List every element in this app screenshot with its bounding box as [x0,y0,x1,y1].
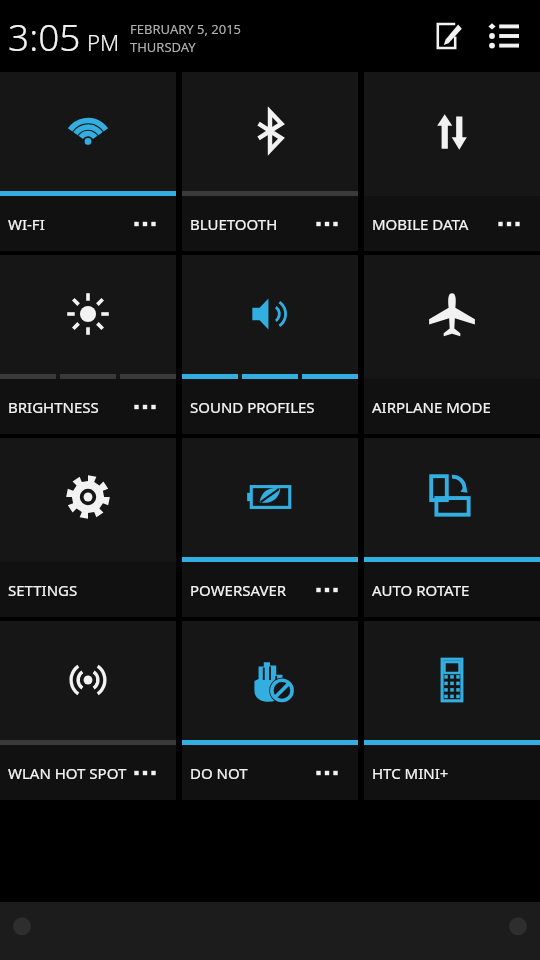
button[interactable]: WI-FI [0,72,176,251]
button[interactable]: MOBILE DATA [364,72,540,251]
staticText: PM [87,27,120,57]
staticText: WLAN HOT SPOT [8,763,127,783]
staticText: AIRPLANE MODE [372,397,491,417]
button[interactable]: WLAN HOT SPOT options [128,756,162,790]
button[interactable]: HTC MINI+ [364,621,540,800]
staticText: MOBILE DATA [372,214,469,234]
staticText: DO NOT DISTURB [190,763,314,783]
button[interactable]: SETTINGS [0,438,176,617]
button[interactable]: DO NOT DISTURB options [310,756,344,790]
staticText: BRIGHTNESS [8,397,99,417]
staticText: AUTO ROTATE [372,580,470,600]
button[interactable]: DO NOT DISTURB [182,621,358,800]
staticText: SETTINGS [8,580,78,600]
staticText: THURSDAY [130,38,196,56]
button[interactable]: SOUND PROFILES [182,255,358,434]
button[interactable]: Notifications list [480,12,528,60]
staticText: FEBRUARY 5, 2015 [130,20,242,38]
button[interactable]: BLUETOOTH options [310,207,344,241]
button[interactable]: WI-FI options [128,207,162,241]
button[interactable]: AUTO ROTATE [364,438,540,617]
staticText: 3:05 [8,11,81,61]
button[interactable]: BLUETOOTH [182,72,358,251]
button[interactable]: BRIGHTNESS options [128,390,162,424]
button[interactable]: POWERSAVER options [310,573,344,607]
button[interactable]: POWERSAVER [182,438,358,617]
button[interactable]: MOBILE DATA options [492,207,526,241]
button[interactable]: AIRPLANE MODE [364,255,540,434]
staticText: BLUETOOTH [190,214,278,234]
staticText: SOUND PROFILES [190,397,315,417]
button[interactable]: BRIGHTNESS [0,255,176,434]
staticText: POWERSAVER [190,580,287,600]
button[interactable]: WLAN HOT SPOT [0,621,176,800]
staticText: HTC MINI+ [372,763,449,783]
staticText: WI-FI [8,214,45,234]
button[interactable]: Edit quick settings [424,12,472,60]
